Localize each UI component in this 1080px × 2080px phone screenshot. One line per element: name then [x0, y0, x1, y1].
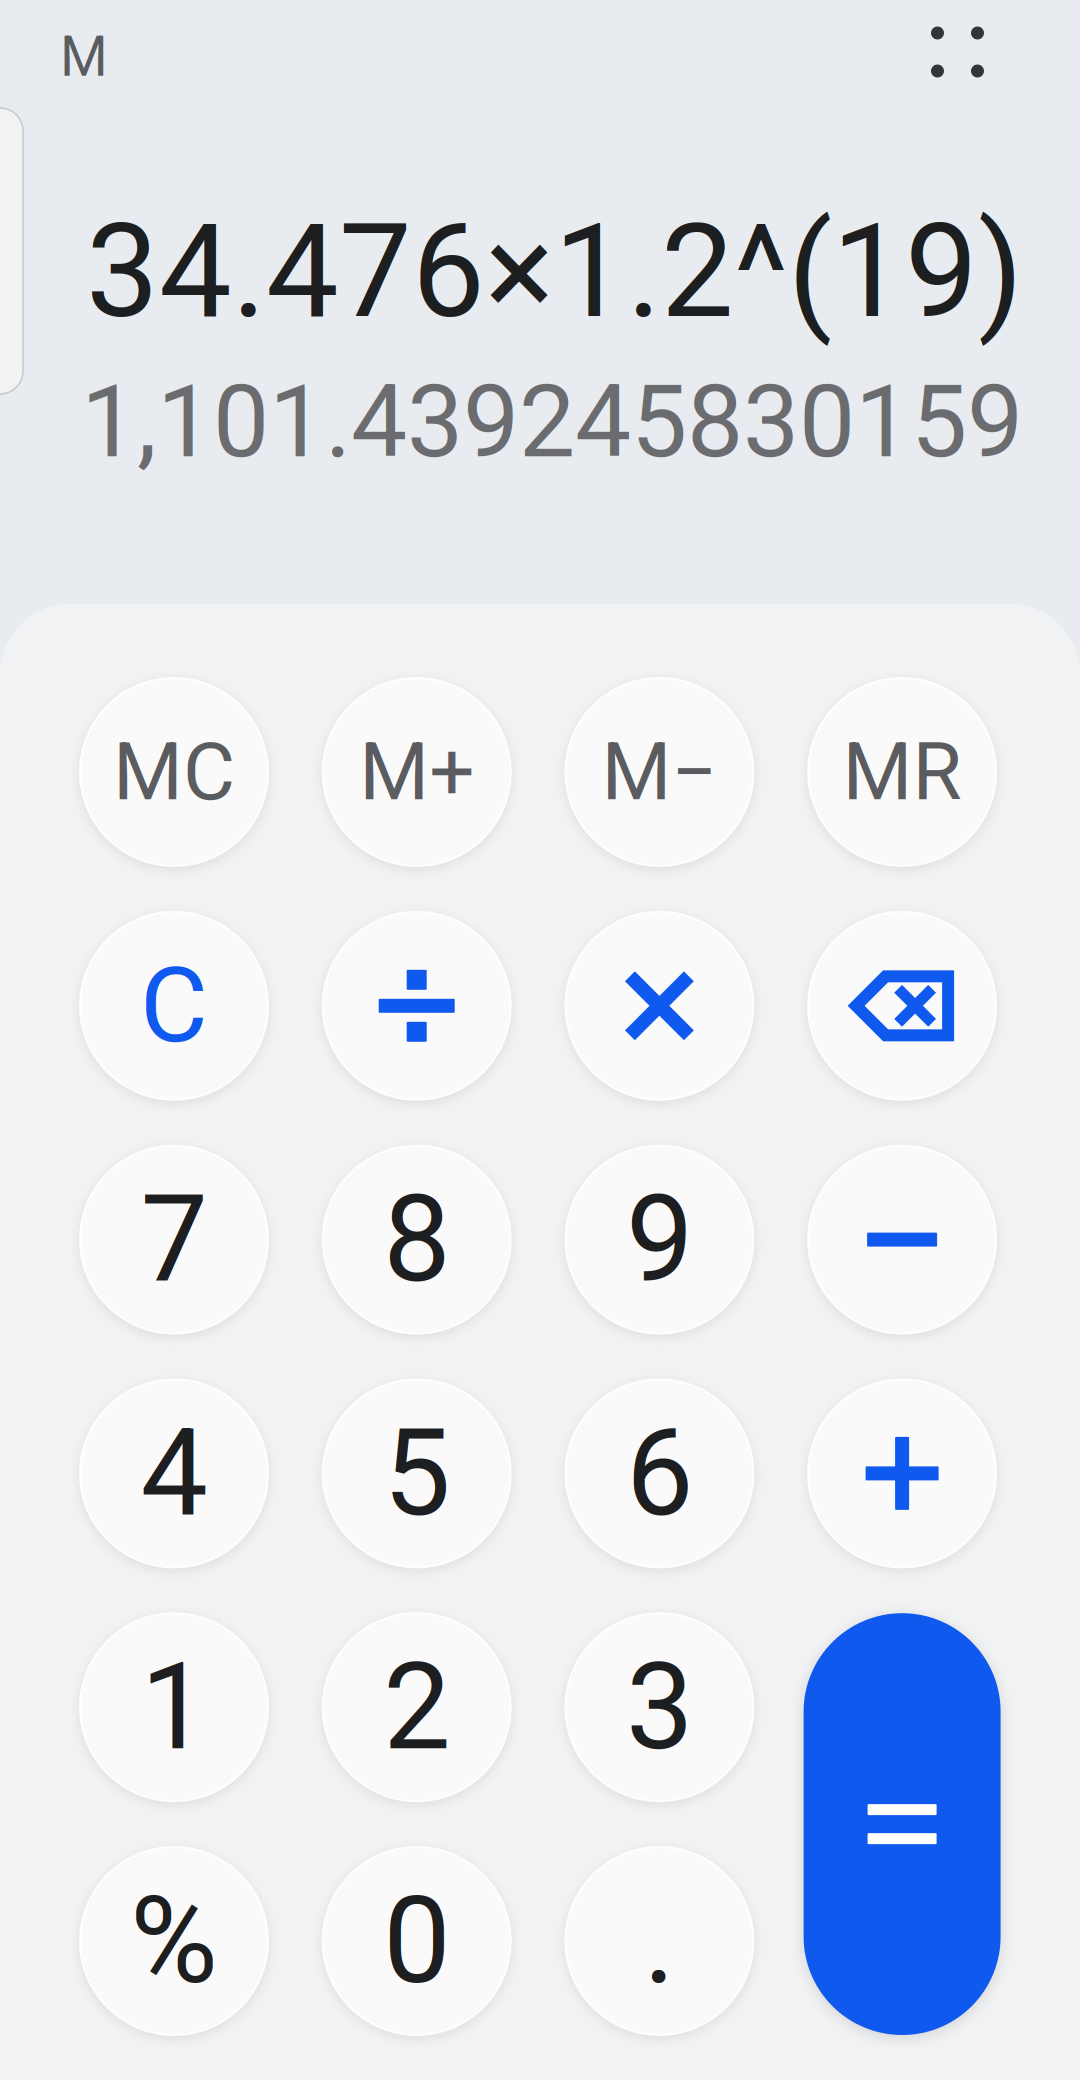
staticText: 9	[626, 1169, 693, 1310]
button[interactable]: MC	[80, 678, 268, 866]
staticText: 6	[626, 1403, 693, 1544]
staticText: MR	[843, 725, 962, 819]
button[interactable]: 9	[565, 1146, 753, 1334]
staticText: .	[643, 1871, 675, 2011]
staticText: M	[60, 25, 108, 89]
button[interactable]: Clear	[80, 912, 268, 1100]
staticText: %	[130, 1871, 218, 2011]
button[interactable]: 7	[80, 1146, 268, 1334]
button[interactable]: M minus	[565, 678, 753, 866]
button[interactable]: More options	[887, 0, 1027, 122]
staticText: 4	[140, 1403, 207, 1544]
button[interactable]: 1	[80, 1613, 268, 1801]
button[interactable]: 0	[323, 1847, 511, 2035]
button[interactable]: 8	[323, 1146, 511, 1334]
button[interactable]: Decimal point	[565, 1847, 753, 2035]
button[interactable]: Divide	[323, 912, 511, 1100]
button[interactable]: MR	[808, 678, 996, 866]
button[interactable]: 3	[565, 1613, 753, 1801]
staticText: C	[140, 945, 208, 1067]
staticText: 3	[626, 1637, 693, 1777]
staticText: 2	[383, 1637, 450, 1777]
button[interactable]: 6	[565, 1379, 753, 1567]
staticText: M−	[601, 725, 717, 819]
staticText: 7	[140, 1169, 207, 1310]
staticText: 8	[383, 1169, 450, 1310]
staticText: 1,101.439245830159	[81, 364, 1023, 481]
button[interactable]: Minus	[808, 1146, 996, 1334]
button[interactable]: Plus	[808, 1379, 996, 1567]
button[interactable]: M plus	[323, 678, 511, 866]
button[interactable]: 2	[323, 1613, 511, 1801]
staticText: M+	[359, 725, 474, 819]
button[interactable]: Multiply	[565, 912, 753, 1100]
button[interactable]: 4	[80, 1379, 268, 1567]
button[interactable]: 5	[323, 1379, 511, 1567]
staticText: 34.476×1.2^(19)	[86, 196, 1023, 348]
staticText: 1	[140, 1637, 207, 1777]
button[interactable]: Percent	[80, 1847, 268, 2035]
staticText: 5	[383, 1403, 450, 1544]
button[interactable]: Backspace	[808, 912, 996, 1100]
button[interactable]: Equals	[804, 1613, 1001, 2035]
staticText: 0	[383, 1871, 450, 2011]
staticText: MC	[113, 725, 235, 819]
